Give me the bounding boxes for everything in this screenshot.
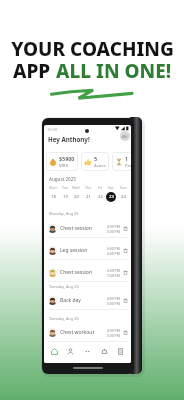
staticText: APP [13, 58, 56, 84]
staticText: 24 [121, 194, 126, 200]
staticText: Hey Anthony! [48, 135, 90, 143]
other: Delete [123, 248, 128, 253]
staticText: August 2025 [49, 176, 77, 182]
button[interactable]: Back day [48, 292, 128, 309]
staticText: Sun [120, 185, 127, 190]
staticText: 7:30 PM [107, 273, 120, 278]
staticText: 22 [98, 194, 103, 200]
staticText: Back day [60, 297, 81, 304]
button[interactable]: 19 [60, 192, 70, 202]
button[interactable]: Documents [114, 345, 127, 358]
button[interactable]: Chest workout [48, 324, 128, 341]
staticText: 20 [74, 194, 79, 200]
staticText: Pend [125, 163, 131, 169]
button[interactable]: $5900 [46, 152, 78, 171]
staticText: Wed [72, 185, 80, 190]
staticText: YOUR COACHING [11, 36, 174, 62]
other: Delete [123, 226, 128, 231]
staticText: Tuesday, Aug 25 [49, 284, 79, 289]
staticText: 5:00 PM [107, 301, 120, 306]
staticText: ALL IN ONE! [56, 58, 172, 84]
staticText: 4:00 PM [107, 296, 120, 301]
staticText: 5:00 PM [107, 246, 120, 251]
staticText: Tuesday, Aug 26 [49, 316, 79, 321]
button[interactable]: 20 [71, 192, 81, 202]
button[interactable]: Leg session [48, 242, 128, 259]
staticText: Thu [85, 185, 92, 190]
button[interactable]: Profile [120, 131, 130, 141]
staticText: Chest session [60, 225, 92, 232]
other: Delete [123, 330, 128, 335]
button[interactable]: 24 [118, 192, 128, 202]
button[interactable]: Payments [98, 345, 111, 358]
staticText: 5:30 PM [107, 333, 120, 338]
button[interactable]: 22 [95, 192, 105, 202]
staticText: Chest session [60, 269, 92, 276]
button[interactable]: Chest session [48, 220, 128, 237]
staticText: Mon [49, 185, 57, 190]
button[interactable]: Home [48, 345, 61, 358]
staticText: AN [122, 134, 128, 139]
staticText: Monday, Aug 25 [49, 211, 79, 216]
staticText: Chest workout [60, 329, 95, 336]
button[interactable]: Messages [81, 345, 94, 358]
button[interactable]: 21 [83, 192, 93, 202]
staticText: MRR [59, 163, 69, 169]
staticText: Leg session [60, 247, 88, 254]
staticText: Sat [108, 185, 114, 190]
staticText: 6:00 PM [107, 251, 120, 256]
staticText: 5 [94, 155, 98, 162]
staticText: Active [94, 163, 106, 169]
staticText: 23 [109, 194, 114, 200]
staticText: 4:30 PM [107, 224, 120, 229]
button[interactable]: 23 [106, 192, 116, 202]
staticText: Tue [62, 185, 69, 190]
staticText: Fri [98, 185, 103, 190]
staticText: 19 [63, 194, 68, 200]
other: Delete [123, 270, 128, 275]
staticText: 10:30 [47, 127, 58, 132]
staticText: 18 [51, 194, 56, 200]
staticText: 5:30 PM [107, 229, 120, 234]
staticText: 21 [86, 194, 91, 200]
staticText: $5900 [59, 155, 75, 162]
staticText: 4:30 PM [107, 328, 120, 333]
button[interactable]: 1 [112, 152, 131, 171]
staticText: 1 [125, 155, 129, 162]
button[interactable]: 18 [48, 192, 58, 202]
staticText: 6:30 PM [107, 268, 120, 273]
other: Delete [123, 298, 128, 303]
button[interactable]: Chest session [48, 264, 128, 281]
button[interactable]: Clients [64, 345, 77, 358]
button[interactable]: 5 [81, 152, 109, 171]
